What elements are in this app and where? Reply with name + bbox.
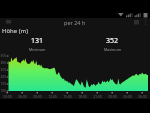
button[interactable]: More options [141,17,150,27]
staticText: 21:00 [93,95,102,99]
staticText: per 24 h [64,19,86,26]
staticText: Minimum [29,47,46,52]
other: Status bar [0,0,150,18]
staticText: Höhe (m) [2,27,28,35]
staticText: 100 [0,89,6,93]
staticText: 131 [31,36,44,46]
staticText: 352 [106,36,119,46]
staticText: 250 [0,68,6,72]
staticText: 18:00 [78,95,87,99]
button[interactable]: 131 [0,36,75,52]
staticText: 15:00 [63,95,72,99]
button[interactable]: 352 [75,36,150,52]
staticText: 09:00 [33,95,42,99]
staticText: 03:00 [123,95,132,99]
staticText: 200 [0,75,6,79]
staticText: Maximum [104,47,122,52]
staticText: 06:00 [18,95,27,99]
staticText: 00:00 [108,95,117,99]
button[interactable]: Calendar [132,17,141,27]
staticText: 03:00 [3,95,12,99]
button[interactable]: Back [3,17,15,27]
staticText: 06:00 [138,95,147,99]
staticText: 150 [0,82,6,86]
staticText: 300 [0,61,6,65]
staticText: 12:00 [48,95,57,99]
staticText: 350 [0,54,6,58]
button[interactable]: per 24 h [0,17,150,27]
